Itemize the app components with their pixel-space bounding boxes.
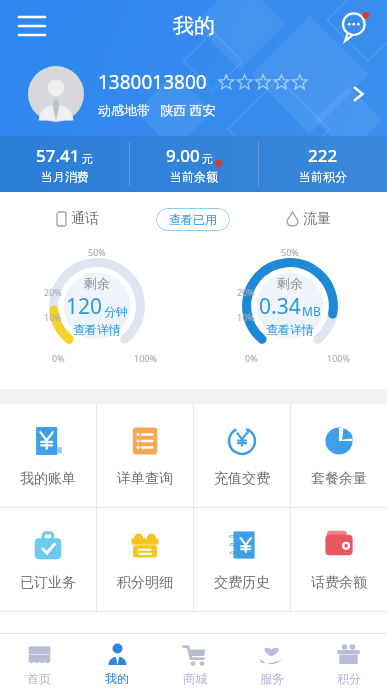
staticText: 我的 <box>173 13 215 39</box>
staticText: 查看详情 <box>266 322 314 337</box>
staticText: 0.34 <box>259 292 301 321</box>
staticText: 套餐余量 <box>311 470 367 488</box>
staticText: 充值交费 <box>214 470 270 488</box>
staticText: 0% <box>52 352 65 364</box>
button[interactable]: 已订业务 <box>0 508 96 611</box>
button[interactable]: 查看详情 <box>266 322 314 337</box>
staticText: 9.00 <box>166 144 200 167</box>
staticText: 1380013800 <box>98 69 207 95</box>
staticText: 剩余 <box>277 275 303 291</box>
button[interactable]: 积分 <box>310 634 387 693</box>
staticText: 57.41 <box>36 144 80 167</box>
staticText: 10% <box>237 311 255 323</box>
button[interactable]: 积分明细 <box>97 508 193 611</box>
button[interactable]: 我的账单 <box>0 404 96 507</box>
staticText: 流量 <box>303 210 331 228</box>
staticText: 0% <box>245 352 258 364</box>
staticText: 我的 <box>105 671 129 686</box>
button[interactable]: 我的 <box>78 634 156 693</box>
button[interactable]: 57.41 <box>0 136 129 192</box>
button[interactable]: 交费历史 <box>194 508 290 611</box>
staticText: 交费历史 <box>214 574 270 592</box>
staticText: 当月消费 <box>41 169 89 184</box>
button[interactable]: 详单查询 <box>97 404 193 507</box>
button[interactable]: 服务 <box>233 634 310 693</box>
button[interactable]: 1380013800 <box>0 52 387 136</box>
staticText: 当前余额 <box>170 169 218 184</box>
staticText: 积分 <box>337 671 361 686</box>
staticText: 20% <box>237 286 255 298</box>
button[interactable]: 话费余额 <box>291 508 387 611</box>
staticText: 查看详情 <box>73 322 121 337</box>
staticText: 我的账单 <box>20 470 76 488</box>
staticText: 服务 <box>260 671 284 686</box>
staticText: 商城 <box>183 671 207 686</box>
button[interactable]: 首页 <box>0 634 78 693</box>
staticText: 当前积分 <box>299 169 347 184</box>
button[interactable]: More <box>339 74 379 114</box>
staticText: MB <box>302 303 321 319</box>
button[interactable]: 商城 <box>156 634 233 693</box>
button[interactable]: 9.00 <box>130 136 258 192</box>
button[interactable]: 222 <box>259 136 387 192</box>
staticText: 20% <box>44 286 62 298</box>
staticText: 元 <box>82 152 93 166</box>
staticText: 已订业务 <box>20 574 76 592</box>
staticText: 查看已用 <box>169 212 217 227</box>
button[interactable]: 查看已用 <box>156 208 230 231</box>
staticText: 120 <box>66 292 103 321</box>
button[interactable]: 查看详情 <box>73 322 121 337</box>
staticText: 首页 <box>27 671 51 686</box>
staticText: 50% <box>281 246 299 258</box>
staticText: 分钟 <box>104 304 128 319</box>
staticText: 积分明细 <box>117 574 173 592</box>
staticText: 通话 <box>71 210 99 228</box>
button[interactable]: 套餐余量 <box>291 404 387 507</box>
staticText: 222 <box>308 144 338 167</box>
staticText: 动感地带 陕西 西安 <box>98 101 216 119</box>
staticText: 10% <box>44 311 62 323</box>
staticText: 话费余额 <box>311 574 367 592</box>
staticText: 100% <box>327 352 350 364</box>
button[interactable]: Messages <box>333 4 377 48</box>
staticText: 50% <box>88 246 106 258</box>
button[interactable]: 充值交费 <box>194 404 290 507</box>
button[interactable]: Menu <box>10 4 54 48</box>
staticText: 详单查询 <box>117 470 173 488</box>
staticText: 元 <box>202 152 213 166</box>
staticText: 剩余 <box>84 275 110 291</box>
staticText: 100% <box>134 352 157 364</box>
